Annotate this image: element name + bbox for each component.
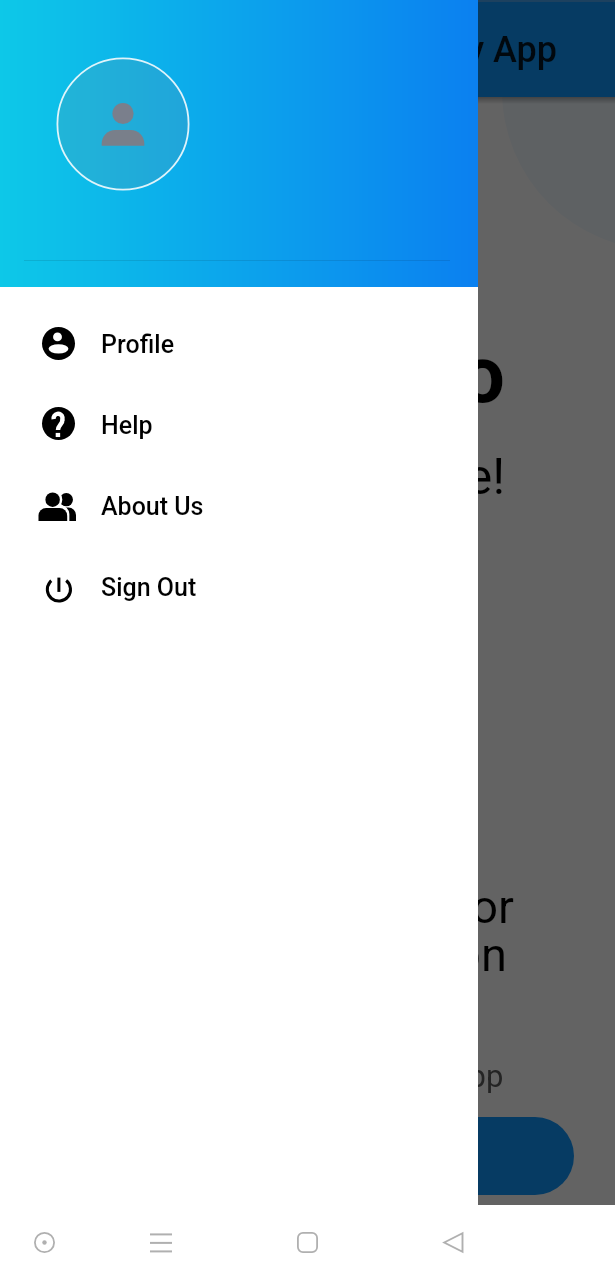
- staticText: Hello: [320, 329, 505, 422]
- button[interactable]: Home: [296, 1205, 319, 1280]
- button[interactable]: Close navigation drawer: [0, 0, 615, 1205]
- staticText: Swipe from left edge or: [28, 879, 514, 934]
- button[interactable]: Recent apps: [149, 1205, 172, 1280]
- button[interactable]: Profile: [0, 303, 478, 384]
- staticText: About Us: [101, 492, 204, 521]
- button[interactable]: Back: [443, 1205, 465, 1280]
- button[interactable]: GET STARTED: [174, 1117, 574, 1195]
- staticText: Sign Out: [101, 573, 197, 602]
- button[interactable]: Sign Out: [0, 546, 478, 627]
- staticText: Help: [101, 411, 153, 440]
- staticText: Profile: [101, 330, 175, 359]
- staticText: My App: [435, 29, 558, 71]
- button[interactable]: Help: [0, 384, 478, 465]
- staticText: Welcome!: [285, 448, 506, 507]
- button[interactable]: Screenshot: [30, 1205, 58, 1280]
- staticText: tap the menu button: [85, 927, 507, 982]
- button[interactable]: About Us: [0, 465, 478, 546]
- staticText: A simple navigation drawer app: [71, 1058, 504, 1094]
